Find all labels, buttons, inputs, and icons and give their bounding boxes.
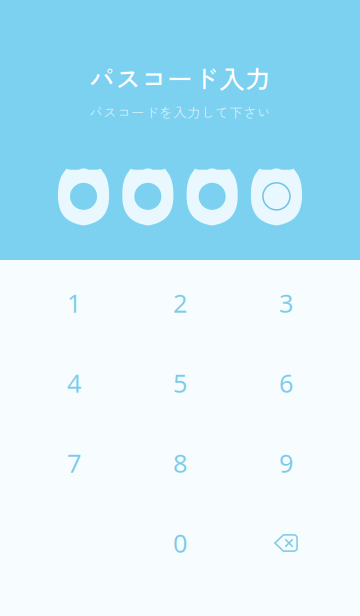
button[interactable]: 0	[127, 503, 233, 583]
button[interactable]: Delete	[233, 503, 339, 583]
staticText: 3	[279, 286, 293, 320]
button[interactable]: 9	[233, 423, 339, 503]
staticText: 0	[173, 526, 187, 560]
button[interactable]: 5	[127, 343, 233, 423]
staticText: 7	[67, 446, 81, 480]
staticText: 1	[67, 286, 81, 320]
button[interactable]: 1	[21, 263, 127, 343]
button[interactable]: 8	[127, 423, 233, 503]
staticText: 4	[67, 366, 81, 400]
button[interactable]: 3	[233, 263, 339, 343]
staticText: 9	[279, 446, 293, 480]
staticText: 8	[173, 446, 187, 480]
button[interactable]: 2	[127, 263, 233, 343]
button[interactable]: 6	[233, 343, 339, 423]
staticText: パスコード入力	[89, 59, 271, 96]
button[interactable]: 4	[21, 343, 127, 423]
staticText: 5	[173, 366, 187, 400]
button[interactable]: 7	[21, 423, 127, 503]
staticText: 6	[279, 366, 293, 400]
staticText: 2	[173, 286, 187, 320]
staticText: パスコードを入力して下さい	[89, 102, 271, 122]
